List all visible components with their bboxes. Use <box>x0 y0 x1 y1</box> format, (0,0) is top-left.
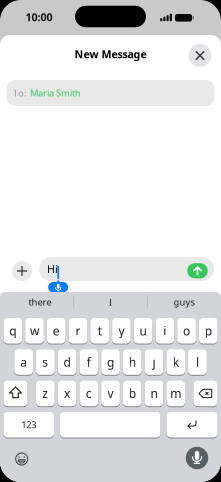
button[interactable] <box>3 381 27 406</box>
button[interactable]: e <box>47 318 65 343</box>
staticText: v <box>107 385 113 401</box>
button[interactable]: t <box>90 318 109 343</box>
button[interactable]: 123 <box>3 412 54 437</box>
button[interactable] <box>193 381 217 406</box>
staticText: e <box>53 323 60 339</box>
button[interactable]: l <box>188 349 207 375</box>
staticText: s <box>42 354 48 370</box>
staticText: i <box>163 323 166 339</box>
button[interactable]: a <box>14 349 33 375</box>
button[interactable]: q <box>3 318 22 343</box>
button[interactable] <box>15 452 28 465</box>
staticText: q <box>9 323 16 339</box>
staticText: y <box>118 323 124 339</box>
staticText: u <box>140 323 147 339</box>
staticText: k <box>173 354 179 370</box>
staticText: guys <box>173 296 194 308</box>
button[interactable]: r <box>69 318 87 343</box>
button[interactable]: x <box>58 381 76 406</box>
button[interactable]: g <box>101 349 120 375</box>
button[interactable]: p <box>199 318 218 343</box>
staticText: b <box>129 385 136 401</box>
button[interactable]: w <box>25 318 44 343</box>
button[interactable] <box>48 279 68 292</box>
staticText: m <box>170 385 181 401</box>
button[interactable]: u <box>134 318 152 343</box>
staticText: New Message <box>74 47 146 61</box>
staticText: f <box>87 354 91 370</box>
button[interactable]: d <box>58 349 76 375</box>
staticText: t <box>98 323 102 339</box>
staticText: a <box>20 354 27 370</box>
staticText: p <box>205 323 212 339</box>
button[interactable]: guys <box>154 293 214 311</box>
staticText: 123 <box>21 419 36 431</box>
staticText: g <box>107 354 114 370</box>
button[interactable]: b <box>123 381 141 406</box>
button[interactable]: I <box>80 293 140 311</box>
staticText: l <box>196 354 199 370</box>
button[interactable]: Hi <box>39 257 214 281</box>
staticText: To: <box>13 87 27 99</box>
staticText: h <box>129 354 136 370</box>
staticText: Maria Smith <box>30 87 81 99</box>
button[interactable] <box>60 412 160 437</box>
staticText: o <box>183 323 190 339</box>
staticText: j <box>152 354 155 370</box>
button[interactable] <box>12 261 32 281</box>
button[interactable]: z <box>36 381 55 406</box>
staticText: I <box>109 296 112 308</box>
staticText: 10:00 <box>25 10 52 24</box>
staticText: x <box>64 385 70 401</box>
staticText: Hi <box>47 262 58 276</box>
button[interactable]: m <box>166 381 185 406</box>
button[interactable]: v <box>101 381 120 406</box>
button[interactable]: k <box>166 349 185 375</box>
staticText: c <box>86 385 92 401</box>
button[interactable]: i <box>155 318 174 343</box>
button[interactable]: there <box>10 293 70 311</box>
button[interactable]: n <box>145 381 163 406</box>
staticText: w <box>30 323 39 339</box>
staticText: there <box>28 296 51 308</box>
button[interactable] <box>188 44 211 67</box>
staticText: d <box>64 354 71 370</box>
button[interactable]: f <box>79 349 98 375</box>
button[interactable] <box>187 263 208 278</box>
button[interactable]: h <box>123 349 142 375</box>
staticText: n <box>150 385 157 401</box>
button[interactable]: o <box>177 318 196 343</box>
button[interactable]: s <box>36 349 55 375</box>
button[interactable]: y <box>112 318 131 343</box>
button[interactable] <box>166 412 217 437</box>
button[interactable] <box>186 447 208 469</box>
staticText: r <box>75 323 80 339</box>
button[interactable]: j <box>145 349 163 375</box>
staticText: z <box>42 385 48 401</box>
button[interactable]: c <box>79 381 98 406</box>
button[interactable]: To: <box>6 80 214 106</box>
